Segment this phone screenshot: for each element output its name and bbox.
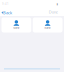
staticText: Name bbox=[44, 26, 51, 30]
staticText: 9:41 bbox=[2, 2, 9, 6]
staticText: Back bbox=[3, 10, 12, 15]
button[interactable]: Name bbox=[1, 17, 31, 32]
staticText: ▮ bbox=[56, 2, 57, 5]
staticText: Done bbox=[49, 9, 58, 15]
staticText: Name bbox=[13, 26, 20, 30]
button[interactable]: Back bbox=[0, 8, 13, 16]
button[interactable]: Name bbox=[33, 17, 63, 32]
button[interactable]: Done bbox=[48, 8, 59, 16]
